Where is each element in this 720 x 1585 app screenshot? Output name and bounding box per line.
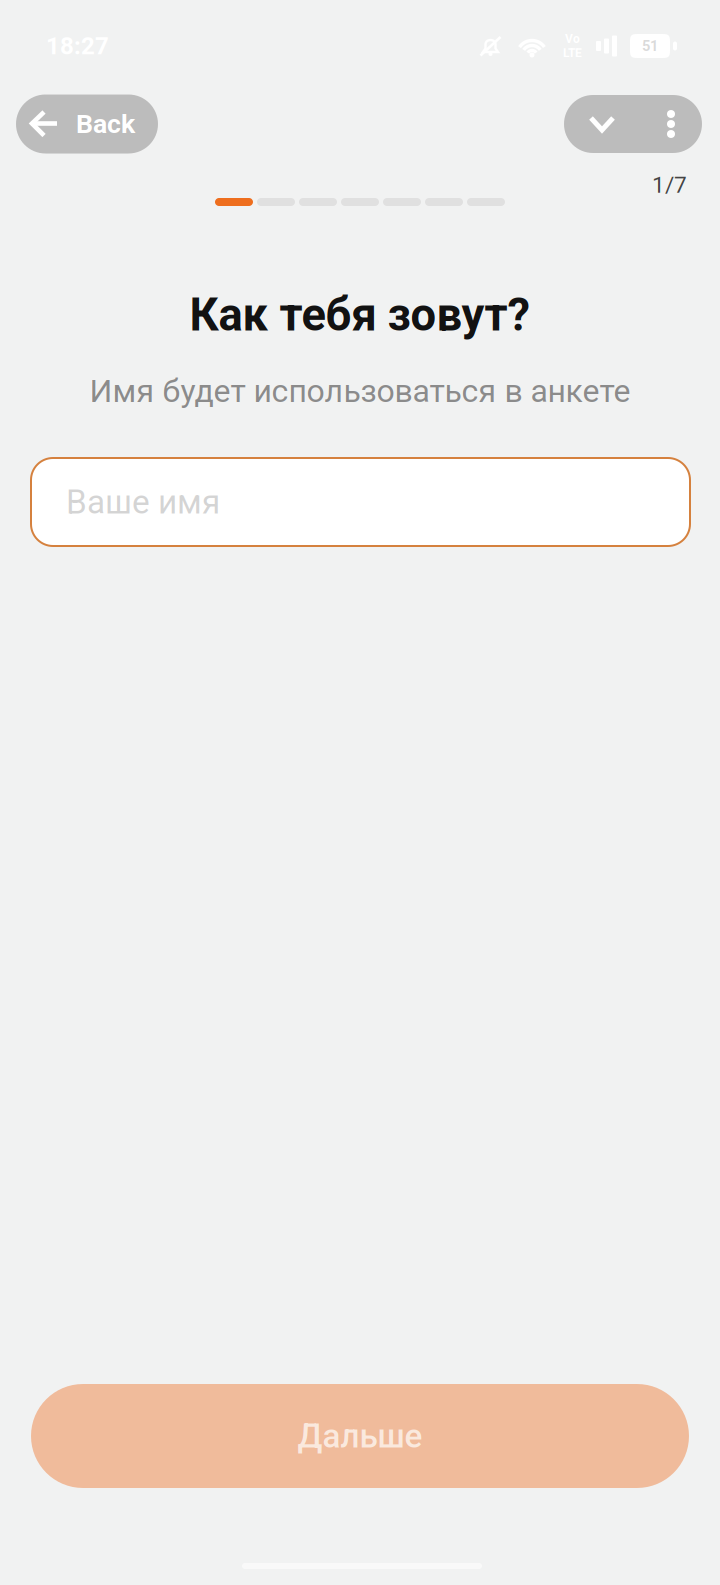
button[interactable]: Дальше bbox=[31, 1384, 689, 1488]
button[interactable]: Collapse bbox=[564, 95, 640, 153]
staticText: Back bbox=[76, 108, 135, 140]
staticText: Как тебя зовут? bbox=[189, 288, 530, 341]
button[interactable]: Ваше имя bbox=[31, 458, 690, 546]
staticText: Дальше bbox=[297, 1416, 422, 1456]
staticText: 51 bbox=[642, 37, 658, 55]
staticText: 1/7 bbox=[652, 172, 687, 198]
staticText: LTE bbox=[563, 46, 582, 60]
staticText: 18:27 bbox=[46, 32, 109, 60]
staticText: Vo bbox=[565, 32, 580, 46]
staticText: Ваше имя bbox=[66, 482, 220, 522]
button[interactable]: More options bbox=[640, 95, 702, 153]
button[interactable]: Back bbox=[16, 94, 158, 153]
staticText: Имя будет использоваться в анкете bbox=[89, 372, 630, 410]
